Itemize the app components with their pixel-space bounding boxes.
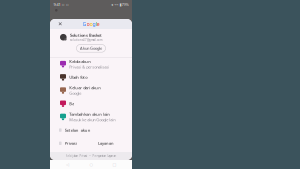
staticText: Kebijakan Privasi • Persyaratan Layanan (65, 154, 116, 158)
staticText: o (89, 20, 92, 28)
button[interactable]: Privasi (50, 137, 132, 150)
staticText: ◁ (66, 162, 69, 167)
staticText: ✕ (58, 21, 62, 27)
staticText: Keluar dari akun (69, 85, 101, 90)
staticText: ▮79% (119, 2, 128, 7)
staticText: ▫ (62, 2, 65, 7)
staticText: Google (69, 91, 81, 96)
staticText: solutions47@gmail.com (70, 38, 102, 42)
button[interactable]: Tambahkan akun lain (50, 110, 132, 123)
button[interactable]: Setelan akun (50, 123, 132, 137)
button[interactable]: Ubah foto (50, 71, 132, 84)
staticText: Privasi & personalisasi (69, 64, 109, 69)
staticText: Privasi (65, 141, 77, 146)
staticText: Layanan (98, 141, 114, 146)
staticText: Kelola akun (69, 59, 91, 64)
staticText: e (96, 20, 99, 28)
staticText: □ (112, 162, 116, 167)
button[interactable]: Recents (108, 160, 120, 169)
button[interactable]: Keluar dari akun (50, 84, 132, 97)
staticText: ⌁⌁ (114, 2, 118, 7)
staticText: Tambahkan akun lain (69, 111, 110, 117)
staticText: Masuk ke akun Google lain (69, 117, 115, 122)
button[interactable]: Ba (50, 97, 132, 110)
button[interactable]: Close (55, 19, 65, 29)
staticText: Ba (69, 101, 74, 106)
button[interactable]: Akun Google (76, 44, 106, 52)
staticText: g (92, 20, 95, 28)
staticText: Akun Google (80, 46, 102, 51)
staticText: Ubah foto (69, 75, 87, 80)
staticText: G (82, 20, 86, 28)
button[interactable]: Kelola akun (50, 57, 132, 71)
staticText: o (86, 20, 89, 28)
staticText: Setelan akun (65, 127, 91, 133)
staticText: ◂ (111, 2, 113, 7)
staticText: Solutions Basket (70, 33, 102, 38)
staticText: ▫ (66, 2, 69, 7)
staticText: 9:41 (53, 2, 60, 7)
staticText: ○ (89, 162, 92, 167)
